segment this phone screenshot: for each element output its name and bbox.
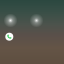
button[interactable]: Answer	[5, 33, 13, 41]
